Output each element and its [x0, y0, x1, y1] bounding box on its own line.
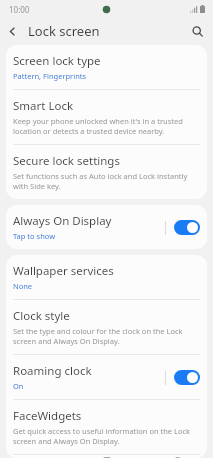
button[interactable]: FaceWidgets	[6, 399, 207, 454]
button[interactable]: Clock style	[6, 299, 207, 354]
staticText: On	[13, 381, 24, 391]
staticText: Set the type and colour for the clock on…	[13, 326, 200, 346]
staticText: Screen lock type	[13, 53, 101, 69]
button[interactable]: Roaming clock	[6, 354, 207, 399]
staticText: 10:00	[9, 4, 30, 15]
button[interactable]: Wallpaper services	[6, 255, 207, 299]
button[interactable]: Smart Lock	[6, 89, 207, 144]
button[interactable]: Search	[186, 20, 208, 42]
button[interactable]: Screen lock type	[6, 45, 207, 89]
button[interactable]: Toggle Roaming clock	[174, 370, 200, 385]
button[interactable]: Secure lock settings	[6, 144, 207, 199]
staticText: FaceWidgets	[13, 408, 82, 424]
staticText: Secure lock settings	[13, 153, 120, 169]
button[interactable]: Back	[0, 19, 24, 43]
staticText: Always On Display	[13, 213, 112, 229]
staticText: Wallpaper services	[13, 263, 114, 279]
staticText: Lock screen	[28, 22, 100, 40]
button[interactable]: Toggle Always On Display	[174, 220, 200, 235]
button[interactable]: Always On Display	[6, 205, 207, 249]
button[interactable]: Contact information	[6, 454, 207, 458]
staticText: Smart Lock	[13, 98, 74, 114]
staticText: Pattern, Fingerprints	[13, 71, 87, 81]
staticText: Tap to show	[13, 231, 56, 241]
staticText: Set functions such as Auto lock and Lock…	[13, 171, 200, 191]
staticText: Clock style	[13, 308, 70, 324]
staticText: Get quick access to useful information o…	[13, 426, 200, 446]
staticText: None	[13, 281, 33, 291]
staticText: Roaming clock	[13, 363, 92, 379]
staticText: Keep your phone unlocked when it's in a …	[13, 116, 200, 136]
